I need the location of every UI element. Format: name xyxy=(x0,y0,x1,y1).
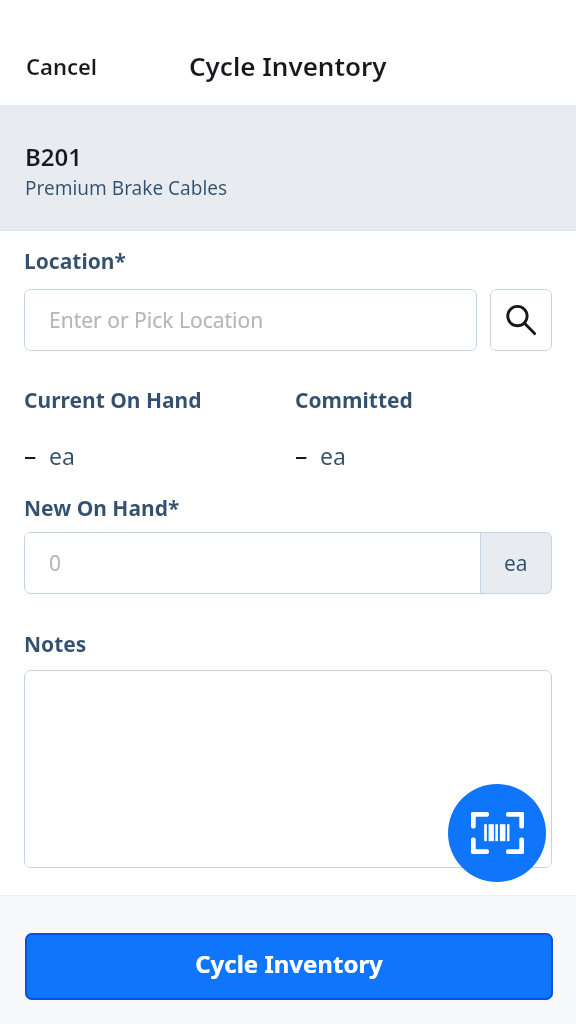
staticText: – xyxy=(24,438,37,472)
staticText: 0 xyxy=(49,549,62,578)
staticText: Enter or Pick Location xyxy=(49,306,264,335)
staticText: Cycle Inventory xyxy=(195,947,383,980)
button[interactable]: 0 xyxy=(24,532,552,594)
staticText: ea xyxy=(49,440,75,471)
button[interactable]: Cycle Inventory xyxy=(25,933,553,1000)
staticText: Cycle Inventory xyxy=(189,48,387,83)
staticText: – xyxy=(295,438,308,472)
button[interactable]: Search xyxy=(490,289,552,351)
button[interactable]: Enter or Pick Location xyxy=(24,289,477,351)
button[interactable]: Scan barcode xyxy=(448,784,546,882)
staticText: B201 xyxy=(25,140,82,173)
staticText: Committed xyxy=(295,386,413,415)
staticText: New On Hand* xyxy=(24,494,180,523)
staticText: Cancel xyxy=(26,51,98,81)
button[interactable] xyxy=(24,670,552,868)
button[interactable]: Cancel xyxy=(0,43,110,89)
staticText: Current On Hand xyxy=(24,386,202,415)
staticText: Premium Brake Cables xyxy=(25,175,228,201)
staticText: Notes xyxy=(24,630,87,659)
staticText: ea xyxy=(504,549,528,578)
staticText: ea xyxy=(320,440,346,471)
staticText: Location* xyxy=(24,247,126,276)
